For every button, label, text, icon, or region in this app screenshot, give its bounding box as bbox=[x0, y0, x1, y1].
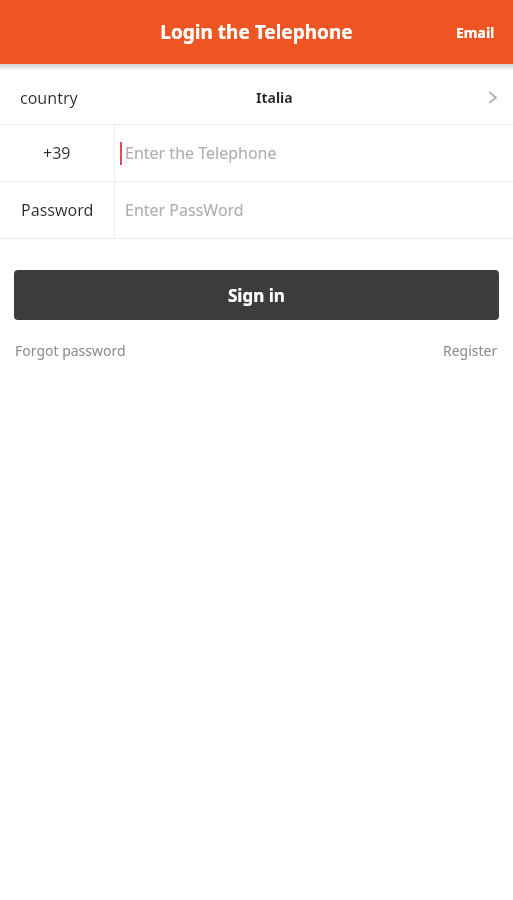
button[interactable]: Forgot password bbox=[15, 335, 126, 366]
other: Select country bbox=[471, 71, 513, 124]
button[interactable]: Sign in bbox=[14, 270, 499, 320]
button[interactable]: Enter the Telephone bbox=[115, 125, 513, 181]
staticText: Enter PassWord bbox=[125, 199, 244, 221]
staticText: country bbox=[20, 87, 78, 109]
button[interactable]: Enter PassWord bbox=[115, 182, 513, 238]
staticText: Login the Telephone bbox=[160, 19, 353, 45]
button[interactable]: country bbox=[0, 71, 513, 124]
staticText: Email bbox=[456, 23, 495, 42]
staticText: Sign in bbox=[228, 284, 285, 307]
staticText: Password bbox=[21, 199, 94, 221]
staticText: Italia bbox=[256, 88, 293, 107]
staticText: Register bbox=[443, 341, 498, 360]
staticText: Forgot password bbox=[15, 341, 126, 360]
staticText: Enter the Telephone bbox=[125, 142, 277, 164]
button[interactable]: Email bbox=[438, 7, 513, 58]
button[interactable]: +39 bbox=[0, 125, 114, 181]
staticText: +39 bbox=[43, 142, 71, 164]
button[interactable]: Register bbox=[443, 335, 498, 366]
